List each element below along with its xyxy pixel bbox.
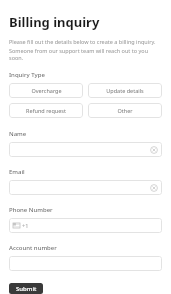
staticText: Please fill out the details below to cre… (9, 38, 156, 45)
button[interactable]: Clear text (9, 180, 162, 195)
staticText: Overcharge (31, 87, 62, 94)
staticText: Account number (9, 244, 57, 252)
staticText: Name (9, 130, 27, 138)
button[interactable]: Clear text (9, 142, 162, 157)
button[interactable]: Submit (9, 283, 43, 294)
staticText: Inquiry Type (9, 71, 45, 79)
staticText: Update details (106, 87, 144, 94)
button[interactable]: Refund request (9, 103, 83, 118)
staticText: Other (117, 107, 133, 114)
staticText: Phone Number (9, 206, 53, 214)
staticText: Submit (16, 285, 37, 293)
button[interactable] (9, 256, 162, 271)
staticText: Refund request (26, 107, 66, 114)
staticText: +1 (22, 222, 29, 229)
staticText: Email (9, 168, 25, 176)
button[interactable]: Clear text (150, 146, 158, 154)
staticText: Billing inquiry (9, 13, 100, 31)
button[interactable]: +1 (9, 218, 162, 233)
button[interactable]: Overcharge (9, 83, 83, 98)
button[interactable]: Clear text (150, 184, 158, 192)
button[interactable]: Update details (88, 83, 162, 98)
button[interactable]: Other (88, 103, 162, 118)
staticText: Someone from our support team will reach… (9, 47, 162, 61)
